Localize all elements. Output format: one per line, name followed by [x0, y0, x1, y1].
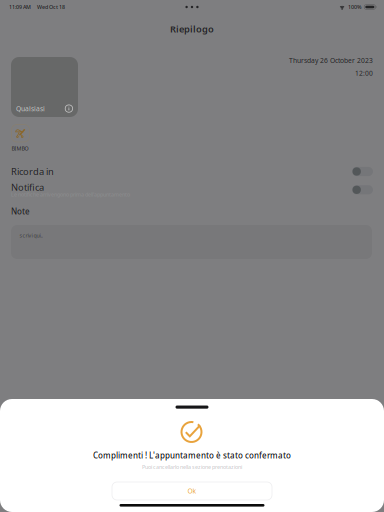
staticText: BIMBO — [11, 145, 28, 152]
button[interactable]: Toggle — [352, 185, 373, 195]
staticText: Qualsiasi — [16, 104, 45, 113]
staticText: 12:00 — [355, 69, 373, 78]
staticText: Complimenti ! L'appuntamento è stato con… — [93, 450, 291, 461]
staticText: scrivi qui.. — [19, 232, 42, 239]
staticText: Wed Oct 18 — [37, 3, 65, 11]
staticText: Ok — [187, 487, 196, 495]
staticText: Puoi cancellarlo nella sezione prenotazi… — [142, 463, 242, 471]
button[interactable]: Ok — [112, 482, 272, 500]
button[interactable]: Toggle — [352, 167, 373, 176]
staticText: Note — [11, 206, 30, 217]
staticText: 100% — [348, 3, 362, 11]
staticText: Thursday 26 October 2023 — [289, 56, 373, 65]
staticText: Riepilogo — [170, 23, 214, 35]
staticText: Notifica — [11, 181, 44, 193]
staticText: Ricorda in — [11, 165, 54, 178]
staticText: 11:09 AM — [9, 3, 31, 11]
